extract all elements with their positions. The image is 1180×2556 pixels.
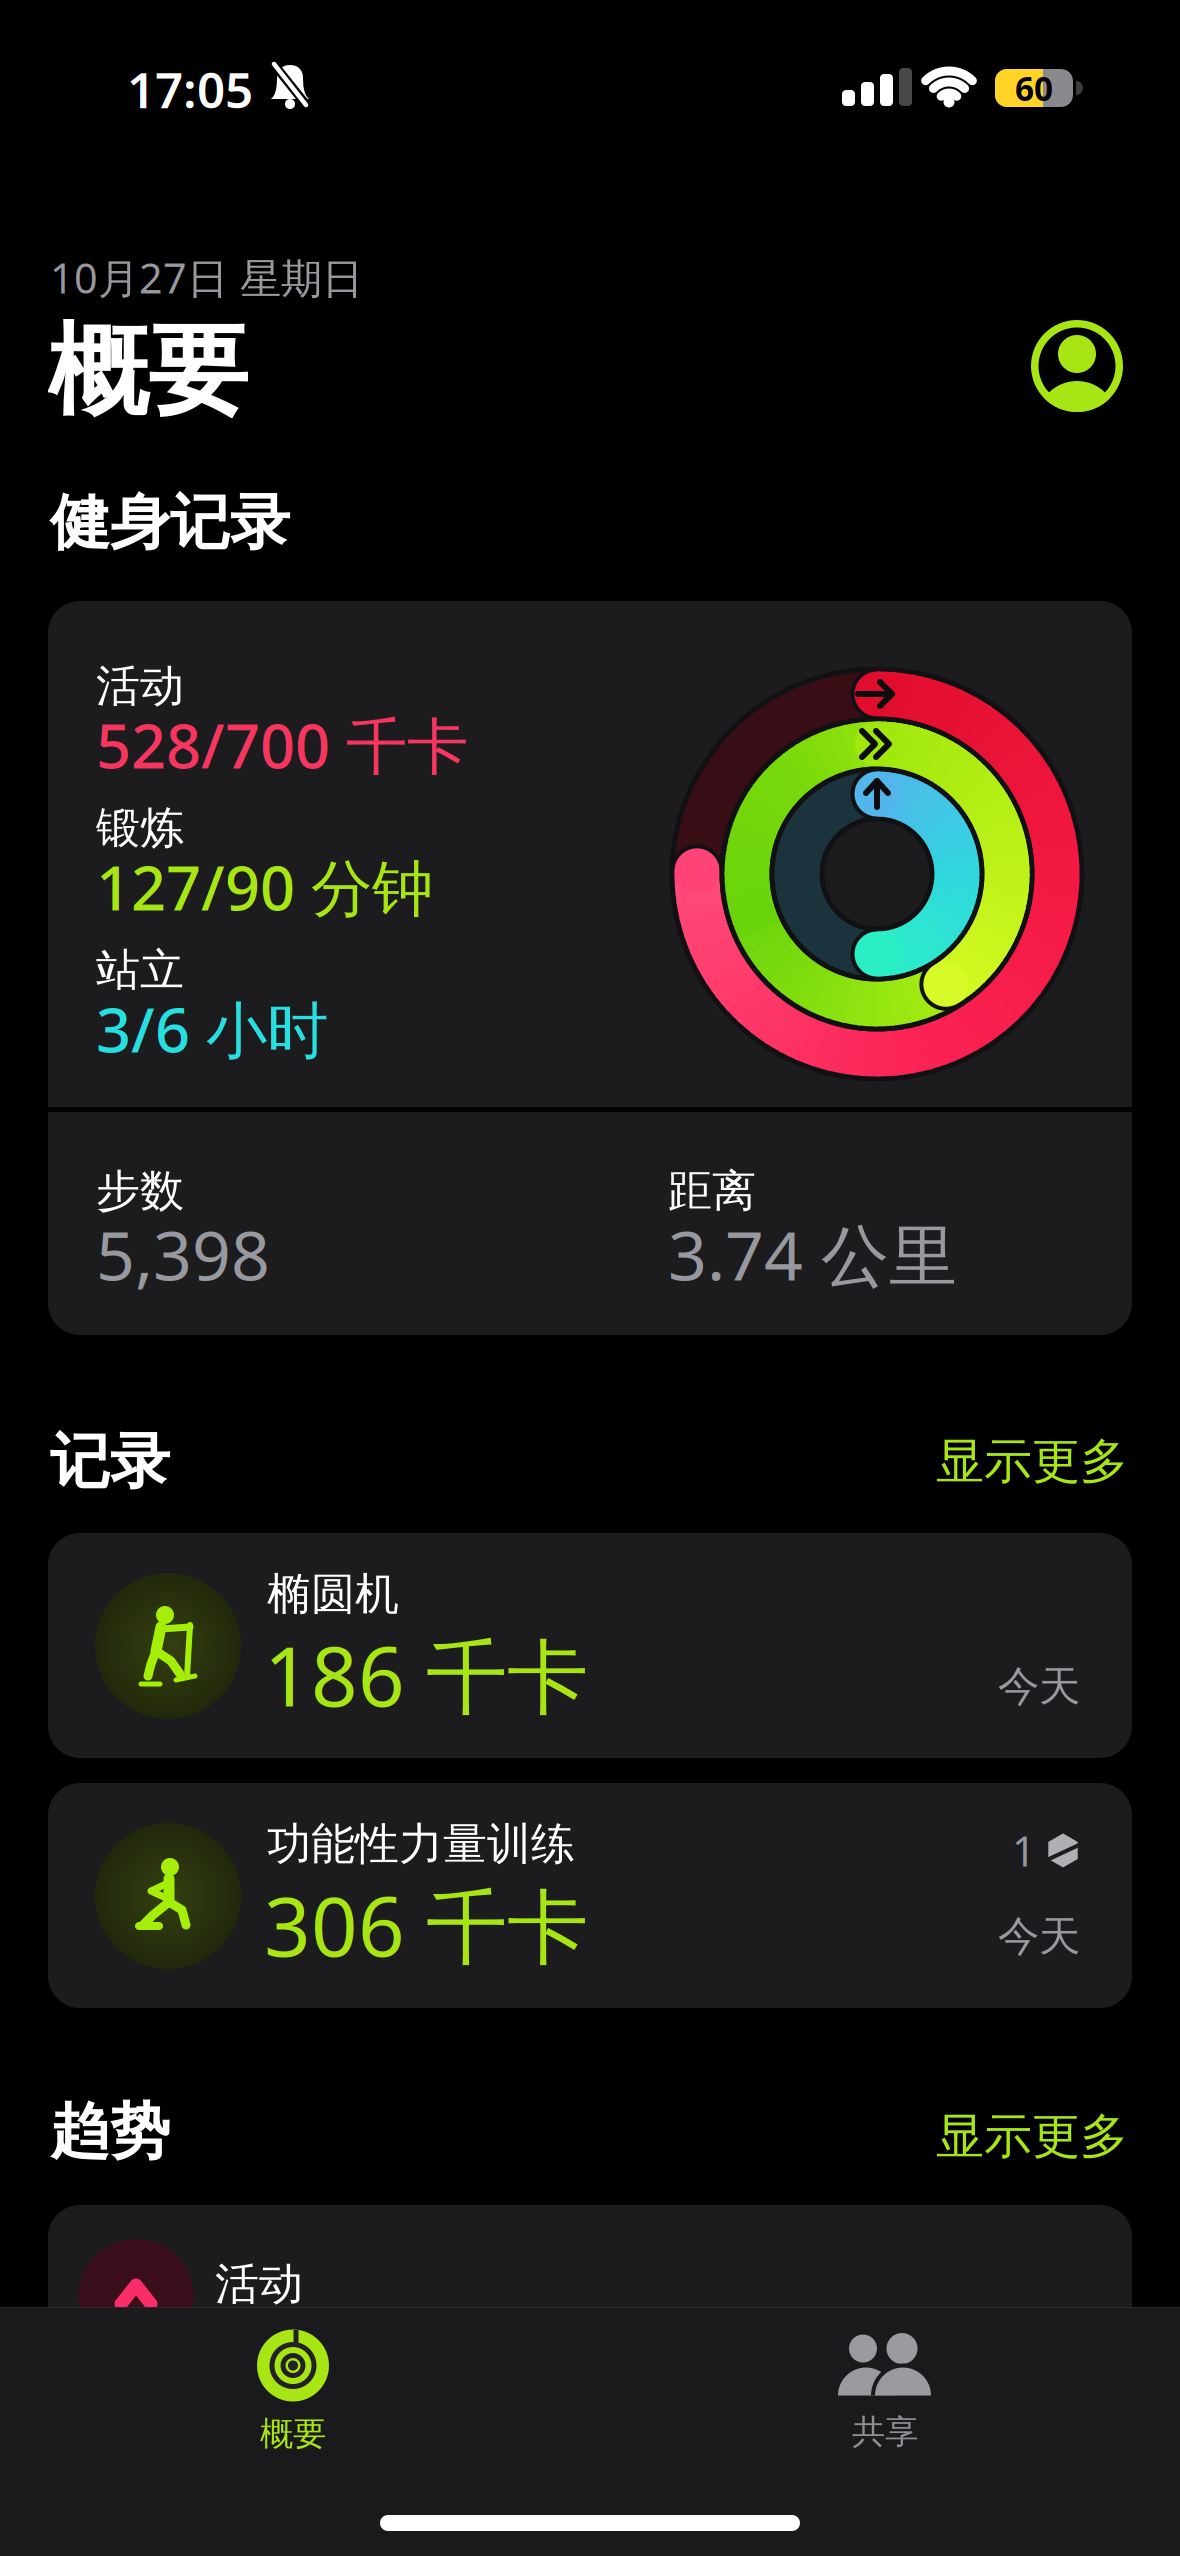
staticText: 共享 [852, 2411, 918, 2452]
staticText: 距离 [668, 1164, 756, 1218]
staticText: 60 [1015, 66, 1053, 110]
staticText: 健身记录 [50, 486, 290, 560]
staticText: 10月27日 星期日 [50, 250, 363, 305]
button[interactable]: 功能性力量训练 [48, 1783, 1132, 2008]
staticText: 锻炼 [96, 801, 184, 855]
staticText: 今天 [998, 1661, 1080, 1712]
staticText: 显示更多 [936, 1432, 1128, 1491]
button[interactable]: 椭圆机 [48, 1533, 1132, 1758]
staticText: 3.74 公里 [668, 1209, 957, 1299]
staticText: 3/6 小时 [96, 988, 328, 1069]
staticText: 17:05 [127, 56, 253, 122]
button[interactable]: 活动 [48, 601, 1132, 1335]
button[interactable]: 活动 [48, 2205, 1132, 2556]
staticText: 活动 [96, 659, 184, 713]
button[interactable]: 显示更多 [936, 1432, 1128, 1491]
staticText: 186 千卡 [264, 1621, 588, 1729]
staticText: 步数 [96, 1164, 184, 1218]
button[interactable]: 共享 [745, 2322, 1025, 2462]
button[interactable]: 概要 [153, 2322, 433, 2462]
staticText: 趋势 [50, 2095, 170, 2169]
staticText: 1 [1012, 1823, 1036, 1878]
staticText: 记录 [50, 1425, 170, 1499]
staticText: 显示更多 [936, 2107, 1128, 2166]
staticText: 5,398 [96, 1209, 270, 1299]
staticText: 127/90 分钟 [96, 846, 433, 927]
staticText: 概要 [48, 310, 248, 433]
staticText: 306 千卡 [264, 1871, 588, 1979]
button[interactable]: 显示更多 [936, 2107, 1128, 2166]
staticText: 站立 [96, 943, 184, 997]
staticText: 功能性力量训练 [267, 1817, 575, 1871]
staticText: 概要 [260, 2413, 326, 2454]
staticText: 椭圆机 [267, 1567, 399, 1621]
staticText: 528/700 千卡 [96, 704, 468, 785]
staticText: 今天 [998, 1911, 1080, 1962]
staticText: 活动 [215, 2257, 303, 2311]
button[interactable]: 个人资料 [1031, 320, 1123, 412]
